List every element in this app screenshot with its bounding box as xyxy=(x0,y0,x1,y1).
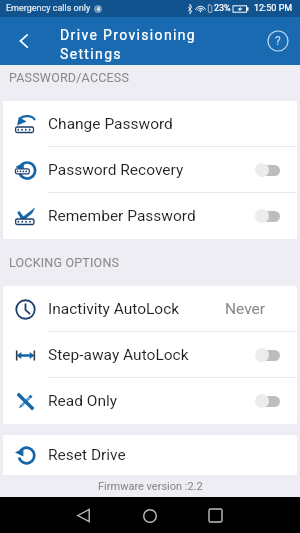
button[interactable]: Back xyxy=(0,17,48,65)
staticText: Step-away AutoLock xyxy=(48,346,255,364)
staticText: LOCKING OPTIONS xyxy=(9,255,120,270)
button[interactable]: Step-away AutoLock xyxy=(3,332,297,378)
button[interactable]: Reset Drive xyxy=(3,435,297,475)
button[interactable]: Change Password xyxy=(3,101,297,147)
button[interactable]: Help xyxy=(256,19,300,63)
button[interactable]: Remember Password xyxy=(3,193,297,239)
staticText: 4 xyxy=(97,6,100,12)
staticText: 23% xyxy=(214,3,231,14)
staticText: Remember Password xyxy=(48,207,255,225)
staticText: Never xyxy=(225,300,266,318)
staticText: Change Password xyxy=(48,115,297,133)
staticText: 12:50 PM xyxy=(254,3,293,14)
button[interactable]: Back xyxy=(66,498,101,533)
staticText: Emergency calls only xyxy=(6,3,91,14)
staticText: Firmware version :2.2 xyxy=(98,480,203,493)
staticText: Read Only xyxy=(48,392,255,410)
button[interactable]: Recents xyxy=(198,498,233,533)
button[interactable]: Inactivity AutoLock xyxy=(3,286,297,332)
button[interactable]: Password Recovery xyxy=(3,147,297,193)
staticText: Drive Provisioning Settings xyxy=(60,27,256,63)
staticText: PASSWORD/ACCESS xyxy=(9,70,130,85)
staticText: Reset Drive xyxy=(48,446,297,464)
staticText: Password Recovery xyxy=(48,161,255,179)
button[interactable]: Home xyxy=(132,498,167,533)
button[interactable]: Read Only xyxy=(3,378,297,424)
staticText: ? xyxy=(275,34,281,48)
staticText: Inactivity AutoLock xyxy=(48,300,225,318)
